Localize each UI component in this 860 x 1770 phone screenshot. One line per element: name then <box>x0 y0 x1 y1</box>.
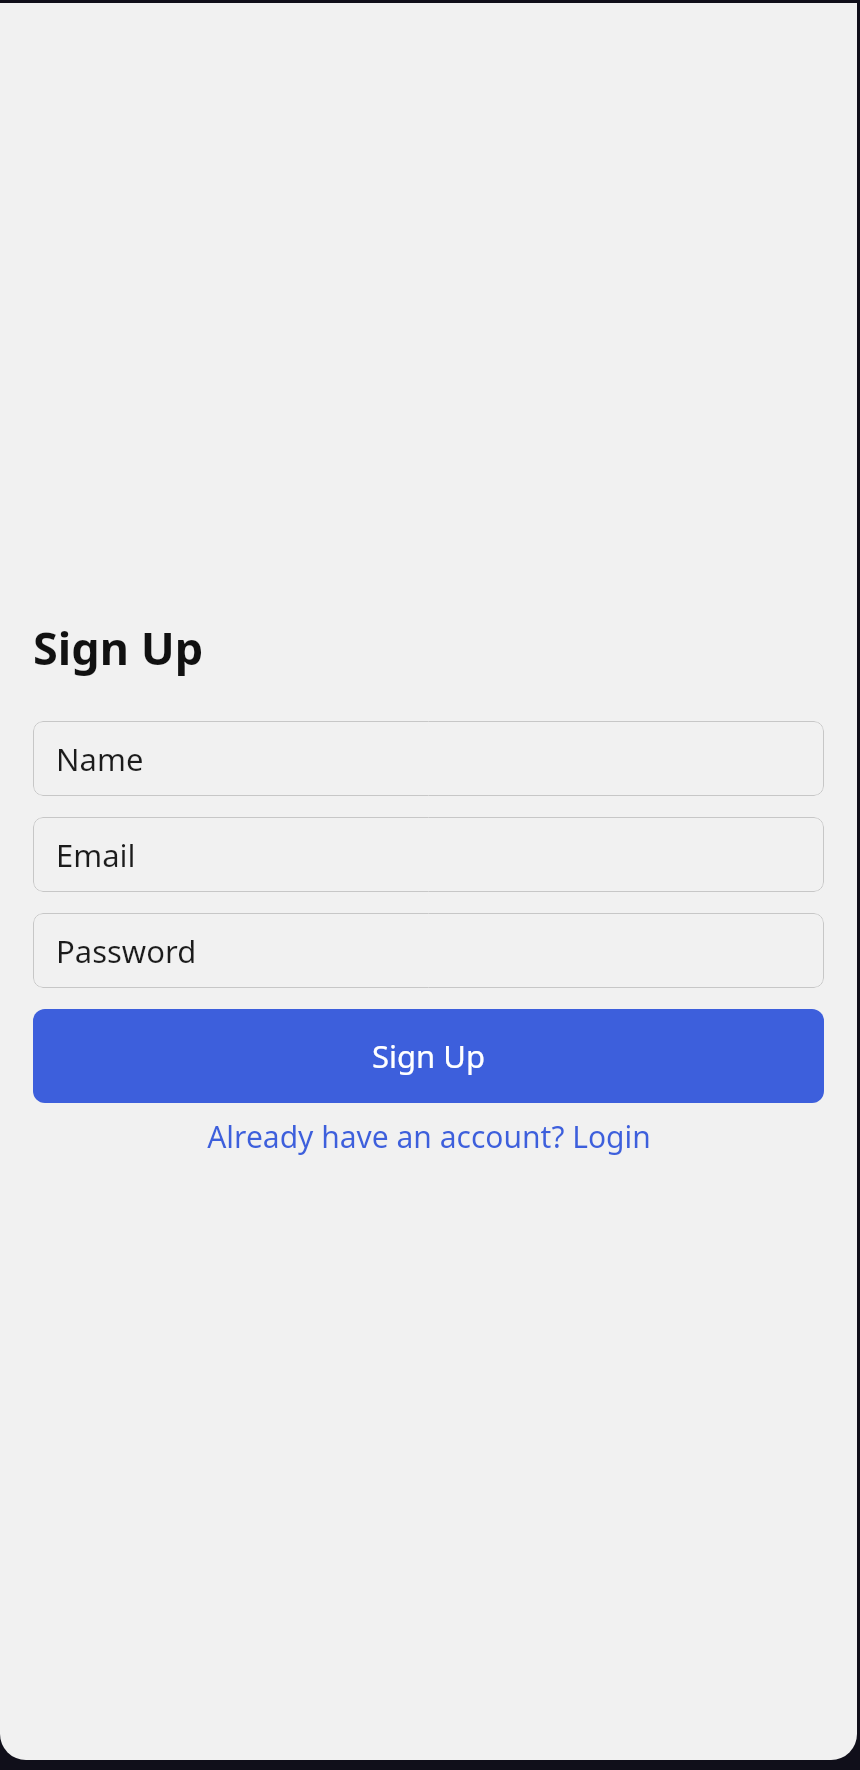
staticText: Already have an account? Login <box>207 1116 651 1157</box>
button[interactable]: Password <box>33 913 824 988</box>
staticText: Email <box>56 834 136 876</box>
button[interactable]: Email <box>33 817 824 892</box>
button[interactable]: Already have an account? Login <box>33 1103 824 1170</box>
staticText: Sign Up <box>33 617 204 678</box>
button[interactable]: Name <box>33 721 824 796</box>
staticText: Name <box>56 738 144 780</box>
staticText: Password <box>56 930 197 972</box>
staticText: Sign Up <box>372 1035 486 1077</box>
button[interactable]: Sign Up <box>33 1009 824 1103</box>
